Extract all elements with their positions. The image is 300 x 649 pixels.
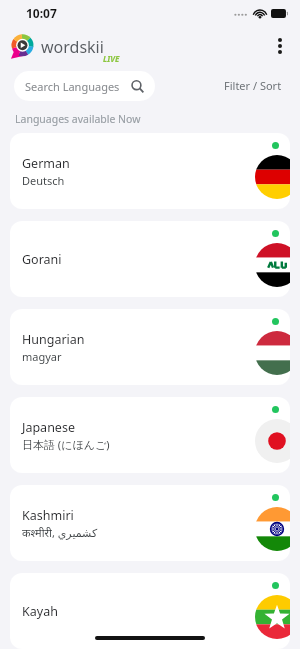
- staticText: कश्मीरी, كشميري: [22, 525, 98, 540]
- staticText: Gorani: [22, 251, 62, 268]
- button[interactable]: wordskii: [10, 34, 104, 59]
- button[interactable]: Kayah: [10, 573, 290, 649]
- button[interactable]: Hungarian: [10, 309, 290, 385]
- staticText: magyar: [22, 349, 62, 364]
- button[interactable]: Filter / Sort: [220, 74, 286, 97]
- staticText: Hungarian: [22, 331, 85, 348]
- staticText: 日本語 (にほんご): [22, 437, 110, 452]
- button[interactable]: Kashmiri: [10, 485, 290, 561]
- staticText: 10:07: [26, 5, 57, 21]
- staticText: LIVE: [103, 53, 120, 64]
- staticText: Search Languages: [25, 79, 120, 94]
- staticText: Deutsch: [22, 173, 65, 188]
- staticText: wordskii: [41, 36, 104, 58]
- staticText: Languages available Now: [15, 112, 141, 126]
- button[interactable]: Search Languages: [14, 71, 155, 101]
- staticText: Kayah: [22, 603, 58, 620]
- staticText: Kashmiri: [22, 507, 74, 524]
- button[interactable]: German: [10, 133, 290, 209]
- staticText: Japanese: [22, 419, 75, 436]
- button[interactable]: More options: [260, 26, 300, 66]
- button[interactable]: Gorani: [10, 221, 290, 297]
- button[interactable]: Japanese: [10, 397, 290, 473]
- staticText: German: [22, 155, 70, 172]
- staticText: Filter / Sort: [224, 78, 282, 93]
